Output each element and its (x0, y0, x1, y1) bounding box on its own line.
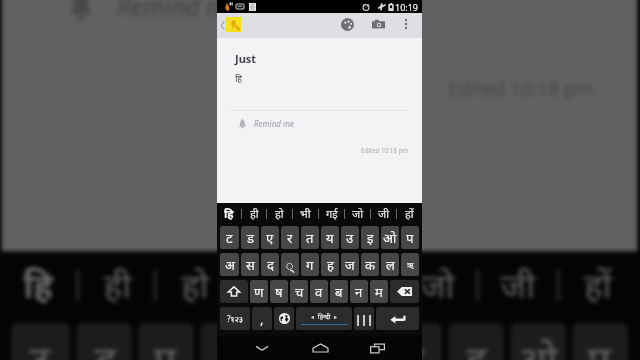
button[interactable]: Hide keyboard (250, 336, 274, 360)
button[interactable]: उ (386, 323, 442, 360)
button[interactable]: हो (267, 203, 292, 224)
button[interactable]: ए (261, 226, 279, 249)
button[interactable]: ||| (354, 307, 374, 330)
button[interactable]: य (321, 226, 339, 249)
staticText: भी (300, 206, 311, 221)
button[interactable]: , (252, 307, 272, 330)
button[interactable]: हि (217, 203, 241, 224)
button[interactable]: ड (76, 323, 132, 360)
button[interactable]: हों (560, 251, 637, 316)
staticText: ◂ (311, 313, 315, 320)
button[interactable]: जो (398, 251, 476, 316)
staticText: ड (247, 229, 254, 247)
button[interactable]: न (350, 280, 368, 303)
button[interactable]: Home (308, 336, 332, 360)
button[interactable]: गई (319, 203, 344, 224)
staticText: गई (326, 206, 338, 221)
button[interactable]: इ (448, 323, 504, 360)
button[interactable]: त (301, 226, 319, 249)
staticText: ड (95, 332, 116, 360)
button[interactable]: ट (11, 323, 70, 360)
staticText: इ (467, 332, 488, 360)
button[interactable]: ही (242, 203, 266, 224)
button[interactable]: ण (250, 280, 268, 303)
staticText: Remind me (116, 0, 240, 22)
button[interactable]: ज (341, 253, 359, 276)
button[interactable]: म (370, 280, 388, 303)
staticText: जो (352, 206, 364, 221)
button[interactable]: ट (220, 226, 239, 249)
button[interactable]: द (261, 253, 279, 276)
button[interactable]: ब (330, 280, 348, 303)
button[interactable]: अ (220, 253, 239, 276)
button[interactable]: र (281, 226, 299, 249)
button[interactable]: Remind me (2, 0, 637, 34)
button[interactable]: य (324, 323, 380, 360)
staticText: जो (420, 261, 457, 307)
button[interactable]: Back (218, 13, 226, 38)
staticText: र (287, 229, 293, 247)
button[interactable]: जी (479, 251, 557, 316)
staticText: गई (340, 261, 377, 307)
staticText: हों (584, 261, 612, 307)
button[interactable] (390, 280, 419, 303)
button[interactable]: Recent apps (365, 336, 389, 360)
button[interactable]: क (361, 253, 379, 276)
button[interactable]: ड (241, 226, 259, 249)
staticText: ग (306, 256, 314, 274)
button[interactable]: Remind me (217, 114, 422, 133)
button[interactable]: हि (2, 251, 76, 316)
button[interactable]: ए (138, 323, 194, 360)
button[interactable] (376, 307, 419, 330)
button[interactable]: हो (157, 251, 234, 316)
button[interactable]: प (401, 226, 419, 249)
staticText: Remind me (254, 118, 294, 129)
staticText: ▸ (334, 313, 338, 320)
button[interactable]: प (572, 323, 628, 360)
staticText: हि (224, 206, 234, 221)
button[interactable]: च (290, 280, 308, 303)
staticText: Edited 10:18 pm (361, 146, 408, 154)
button[interactable]: ष (270, 280, 288, 303)
staticText: ज (345, 256, 355, 274)
button[interactable]: उ (341, 226, 359, 249)
button[interactable] (220, 280, 248, 303)
staticText: भी (259, 261, 293, 307)
button[interactable]: जो (345, 203, 370, 224)
button[interactable]: ओ (510, 323, 566, 360)
button[interactable]: Change colour (336, 13, 358, 35)
button[interactable] (274, 307, 294, 330)
button[interactable]: इ (361, 226, 379, 249)
button[interactable]: ह (321, 253, 339, 276)
staticText: प (406, 229, 414, 247)
button[interactable]: Note colour (226, 17, 241, 32)
button[interactable]: गई (318, 251, 395, 316)
button[interactable]: ग (301, 253, 319, 276)
button[interactable]: ल (381, 253, 399, 276)
button[interactable]: ?१२३ (220, 307, 250, 330)
staticText: त (306, 229, 314, 247)
button[interactable]: स (241, 253, 259, 276)
staticText: हो (181, 261, 209, 307)
staticText: हों (405, 206, 414, 221)
button[interactable]: ही (79, 251, 154, 316)
button[interactable]: भी (237, 251, 315, 316)
button[interactable]: हों (397, 203, 422, 224)
button[interactable]: व (310, 280, 328, 303)
button[interactable]: र (200, 323, 256, 360)
staticText: ||| (355, 311, 374, 326)
button[interactable]: ऋ (401, 253, 419, 276)
staticText: ह (327, 256, 334, 274)
button[interactable]: ◂ (296, 307, 352, 330)
button[interactable]: जी (371, 203, 396, 224)
staticText: ट (30, 332, 51, 360)
button[interactable]: ् (281, 253, 299, 276)
button[interactable]: More options (395, 13, 417, 35)
staticText: य (326, 229, 334, 247)
button[interactable]: भी (293, 203, 318, 224)
staticText: स (246, 256, 255, 274)
staticText: ब (335, 283, 343, 301)
button[interactable]: Camera (367, 13, 389, 35)
button[interactable]: ओ (381, 226, 399, 249)
button[interactable]: त (262, 323, 318, 360)
